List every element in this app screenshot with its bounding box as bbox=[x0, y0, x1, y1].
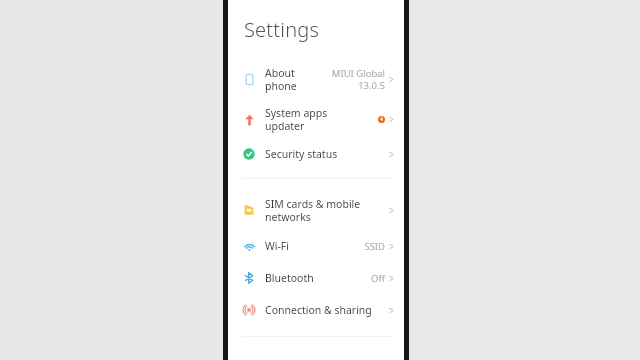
other: SIM cards and mobile networks bbox=[242, 203, 256, 217]
staticText: Bluetooth bbox=[265, 271, 371, 285]
staticText: SSID bbox=[364, 240, 385, 253]
button[interactable]: Bluetooth bbox=[228, 262, 404, 294]
staticText: MIUI Global 13.0.5 bbox=[331, 67, 385, 92]
staticText: Connection & sharing bbox=[265, 303, 388, 317]
staticText: SIM cards & mobile networks bbox=[265, 197, 388, 224]
button[interactable]: System apps updater bbox=[228, 99, 404, 139]
other: About phone bbox=[242, 72, 256, 86]
button[interactable]: Connection and sharing bbox=[228, 294, 404, 326]
other: System apps updater bbox=[242, 112, 256, 126]
staticText: System apps updater bbox=[265, 106, 378, 133]
other: Security status bbox=[242, 147, 256, 161]
button[interactable]: About phone bbox=[228, 59, 404, 99]
button[interactable]: Wi-Fi bbox=[228, 230, 404, 262]
other: Bluetooth bbox=[242, 271, 256, 285]
staticText: Off bbox=[371, 272, 385, 285]
other: Connection and sharing bbox=[242, 303, 256, 317]
button[interactable]: SIM cards and mobile networks bbox=[228, 190, 404, 230]
staticText: Settings bbox=[244, 16, 320, 43]
staticText: Security status bbox=[265, 147, 388, 161]
staticText: 4 bbox=[380, 116, 383, 123]
other: Wi-Fi bbox=[242, 239, 256, 253]
button[interactable]: Security status bbox=[228, 139, 404, 169]
staticText: About phone bbox=[265, 66, 331, 93]
staticText: Wi-Fi bbox=[265, 239, 364, 253]
